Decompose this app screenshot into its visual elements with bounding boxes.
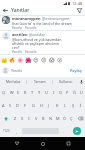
- staticText: D: [16, 103, 19, 108]
- staticText: C: [28, 116, 31, 121]
- staticText: Merhaba: [6, 79, 21, 84]
- button[interactable]: N: [47, 112, 54, 125]
- button[interactable]: Paylaş: [69, 66, 83, 75]
- button[interactable]: Recents: [59, 137, 77, 150]
- button[interactable]: Ğ: [71, 86, 78, 99]
- staticText: W: [10, 90, 14, 95]
- button[interactable]: S: [7, 99, 14, 112]
- staticText: U: [45, 90, 48, 95]
- button[interactable]: H: [37, 99, 45, 112]
- button[interactable]: U: [43, 86, 50, 99]
- button[interactable]: Back: [0, 6, 11, 15]
- button[interactable]: 😡: [40, 55, 48, 64]
- staticText: Yanıtla: [12, 50, 22, 54]
- staticText: 😱: [49, 57, 55, 63]
- button[interactable]: L: [61, 99, 69, 112]
- button[interactable]: I: [50, 86, 57, 99]
- button[interactable]: Z: [11, 112, 19, 125]
- button[interactable]: Ü: [78, 86, 85, 99]
- button[interactable]: Back: [8, 137, 26, 150]
- staticText: Ş: [72, 103, 75, 108]
- button[interactable]: Merhaba: [0, 77, 26, 86]
- button[interactable]: O: [57, 86, 64, 99]
- staticText: ,: [16, 129, 18, 134]
- button[interactable]: B: [40, 112, 47, 125]
- staticText: V: [35, 116, 38, 121]
- button[interactable]: E: [15, 86, 22, 99]
- staticText: @bonuthosd ve yük kasımdan ofishtik ve p…: [12, 37, 62, 50]
- button[interactable]: Q: [0, 86, 8, 99]
- staticText: X: [21, 116, 24, 121]
- button[interactable]: ,: [13, 125, 21, 137]
- button[interactable]: G: [29, 99, 37, 112]
- staticText: Ğ: [73, 90, 76, 95]
- staticText: E: [17, 90, 20, 95]
- button[interactable]: 🔥: [8, 55, 16, 64]
- button[interactable]: R: [22, 86, 29, 99]
- staticText: Favorile: [25, 50, 37, 54]
- button[interactable]: Kullanıcı: [53, 77, 78, 86]
- staticText: @moranomypen: [42, 16, 70, 21]
- staticText: Tamam: [34, 79, 46, 84]
- button[interactable]: J: [45, 99, 53, 112]
- staticText: Y: [38, 90, 41, 95]
- button[interactable]: Voice input: [78, 77, 85, 86]
- staticText: B: [42, 116, 45, 121]
- staticText: Ü: [80, 90, 83, 95]
- button[interactable]: 😮: [56, 55, 64, 64]
- button[interactable]: M: [54, 112, 61, 125]
- button[interactable]: 😱: [48, 55, 56, 64]
- button[interactable]: K: [53, 99, 61, 112]
- staticText: S: [9, 103, 12, 108]
- staticText: that Guerra' is the land of the dream: [12, 21, 72, 26]
- button[interactable]: 🌸: [16, 55, 24, 64]
- button[interactable]: Ş: [69, 99, 77, 112]
- staticText: 😮: [57, 57, 63, 63]
- staticText: K: [56, 103, 59, 108]
- staticText: Ö: [63, 116, 67, 121]
- staticText: moranomypen: [12, 16, 41, 21]
- staticText: @onadize: [29, 32, 46, 37]
- button[interactable]: Tamam: [27, 77, 52, 86]
- staticText: 🌸: [17, 57, 24, 63]
- button[interactable]: P: [64, 86, 71, 99]
- staticText: P: [66, 90, 69, 95]
- button[interactable]: Send: [68, 125, 85, 137]
- button[interactable]: Backspace: [75, 112, 85, 125]
- staticText: L: [64, 103, 67, 108]
- button[interactable]: Ç: [68, 112, 75, 125]
- button[interactable]: İ: [77, 99, 85, 112]
- button[interactable]: Filter: [74, 6, 85, 15]
- button[interactable]: Ö: [61, 112, 68, 125]
- button[interactable]: F: [21, 99, 29, 112]
- staticText: 😡: [41, 57, 47, 63]
- button[interactable]: A: [0, 99, 7, 112]
- staticText: Kullanıcı: [59, 79, 73, 84]
- button[interactable]: V: [33, 112, 40, 125]
- staticText: Yanıtla: [11, 68, 69, 73]
- button[interactable]: W: [8, 86, 15, 99]
- button[interactable]: 😍: [32, 55, 40, 64]
- staticText: 12:48: [72, 1, 83, 6]
- staticText: A: [2, 103, 5, 108]
- button[interactable]: moranomypen: [0, 16, 85, 30]
- staticText: M: [56, 116, 60, 121]
- button[interactable]: T: [29, 86, 36, 99]
- staticText: J: [48, 103, 50, 108]
- button[interactable]: X: [19, 112, 26, 125]
- button[interactable]: acetilen: [0, 31, 85, 54]
- button[interactable]: C: [26, 112, 33, 125]
- staticText: Paylaş: [70, 68, 82, 73]
- button[interactable]: Home: [34, 137, 52, 150]
- button[interactable]: Shift: [0, 112, 11, 125]
- staticText: acetilen: [12, 32, 28, 37]
- staticText: N: [49, 116, 52, 121]
- staticText: Yanıtla: [12, 26, 22, 30]
- button[interactable]: 👑: [0, 55, 8, 64]
- button[interactable]: 🌺: [24, 55, 32, 64]
- button[interactable]: Y: [36, 86, 43, 99]
- button[interactable]: ?123: [0, 125, 13, 137]
- button[interactable]: D: [14, 99, 21, 112]
